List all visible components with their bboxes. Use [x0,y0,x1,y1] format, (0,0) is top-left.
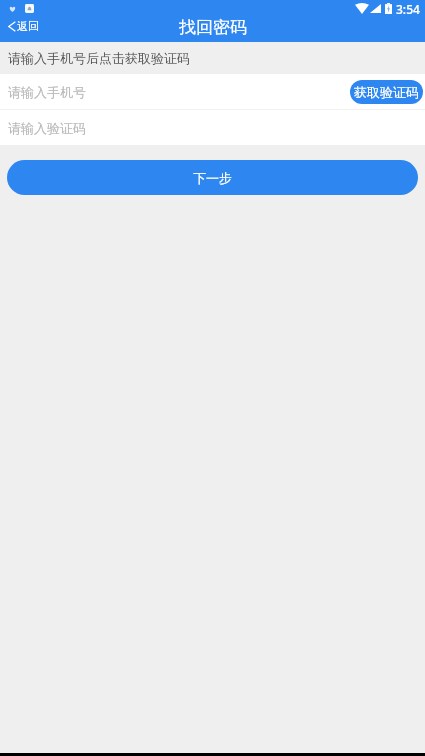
staticText: 请输入手机号后点击获取验证码 [8,50,190,66]
button[interactable]: 下一步 [7,160,418,195]
staticText: 获取验证码 [354,84,419,100]
button[interactable]: 请输入手机号 [0,74,425,109]
staticText: 3:54 [396,1,420,17]
staticText: 下一步 [193,170,232,186]
staticText: 返回 [17,19,39,33]
staticText: 请输入手机号 [8,84,86,100]
staticText: 请输入验证码 [8,120,86,136]
button[interactable]: 请输入验证码 [0,110,425,145]
other: Back [8,21,16,32]
staticText: 找回密码 [179,17,247,38]
button[interactable]: Back [0,17,49,35]
button[interactable]: 获取验证码 [350,80,423,104]
